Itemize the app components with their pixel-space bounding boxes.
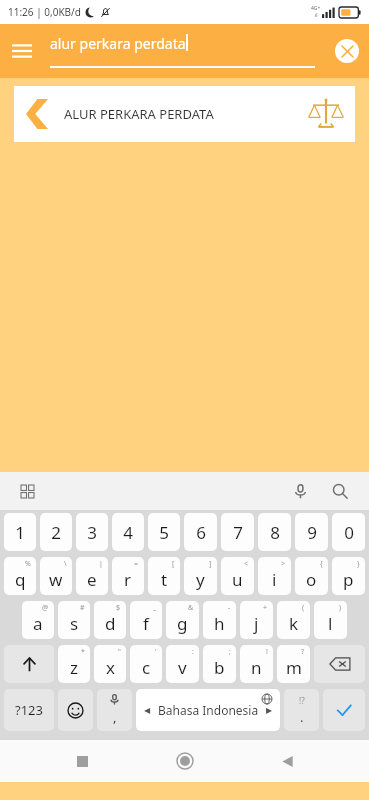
staticText: ▶	[266, 706, 273, 715]
button[interactable]: #	[58, 601, 90, 639]
button[interactable]: 7	[221, 513, 254, 551]
button[interactable]: @	[22, 601, 54, 639]
button[interactable]: comma	[97, 689, 132, 731]
staticText: ALUR PERKARA PERDATA	[64, 105, 214, 123]
staticText: q	[15, 568, 26, 591]
staticText: ,	[113, 708, 117, 726]
button[interactable]: emoji	[58, 689, 93, 731]
staticText: ]	[209, 559, 212, 569]
button[interactable]: %	[4, 557, 36, 595]
button[interactable]: {	[295, 557, 328, 595]
staticText: r	[124, 568, 132, 591]
staticText: alur perkara perdata	[50, 34, 186, 53]
staticText: 11:26 | 0,0KB/d	[8, 5, 81, 19]
staticText: ◀	[144, 706, 151, 715]
staticText: 7	[233, 521, 243, 544]
staticText: <	[244, 559, 249, 569]
button[interactable]: period	[284, 689, 319, 731]
button[interactable]: 1	[4, 513, 36, 551]
button[interactable]: >	[258, 557, 291, 595]
staticText: f	[143, 612, 149, 635]
button[interactable]: ALUR PERKARA PERDATA	[14, 86, 355, 142]
button[interactable]: $	[94, 601, 126, 639]
button[interactable]: ◀	[136, 689, 280, 731]
button[interactable]: _	[130, 601, 162, 639]
button[interactable]: \	[40, 557, 72, 595]
button[interactable]: Clear search	[325, 29, 369, 73]
button[interactable]: }	[332, 557, 365, 595]
button[interactable]: *	[58, 645, 90, 683]
button[interactable]: 2	[40, 513, 72, 551]
staticText: x	[106, 656, 115, 679]
staticText: +	[263, 603, 268, 613]
staticText: (	[302, 603, 305, 613]
staticText: w	[49, 568, 63, 591]
button[interactable]: !	[240, 645, 273, 683]
staticText: b	[214, 656, 225, 679]
staticText: 1	[15, 521, 25, 544]
staticText: y	[196, 568, 205, 591]
button[interactable]: Home	[164, 740, 206, 782]
button[interactable]: 5	[148, 513, 180, 551]
button[interactable]: ?	[277, 645, 310, 683]
staticText: .	[300, 708, 304, 726]
button[interactable]: &	[166, 601, 199, 639]
button[interactable]: del	[314, 645, 365, 683]
button[interactable]: Menu	[0, 29, 44, 73]
button[interactable]: "	[94, 645, 126, 683]
button[interactable]: shift	[4, 645, 54, 683]
staticText: -	[228, 603, 231, 613]
button[interactable]: :	[166, 645, 199, 683]
button[interactable]: -	[203, 601, 236, 639]
staticText: o	[306, 568, 317, 591]
button[interactable]: ;	[203, 645, 236, 683]
staticText: l	[328, 612, 333, 635]
staticText: 4G+	[311, 5, 321, 12]
staticText: p	[343, 568, 354, 591]
staticText: a	[33, 612, 43, 635]
button[interactable]: <	[221, 557, 254, 595]
button[interactable]: alur perkara perdata	[50, 34, 315, 68]
button[interactable]: 6	[184, 513, 217, 551]
staticText: ıl	[315, 12, 318, 19]
staticText: )	[339, 603, 342, 613]
staticText: n	[251, 656, 262, 679]
button[interactable]: Recent apps	[61, 740, 103, 782]
button[interactable]: Voice input	[285, 476, 315, 506]
staticText: g	[177, 612, 188, 635]
button[interactable]: Search	[325, 476, 355, 506]
button[interactable]: 9	[295, 513, 328, 551]
staticText: 5	[159, 521, 169, 544]
staticText: :	[192, 647, 194, 657]
staticText: !?	[299, 695, 305, 706]
button[interactable]: Keyboard menu	[14, 478, 40, 504]
staticText: *	[81, 647, 85, 657]
button[interactable]: ?123	[4, 689, 54, 731]
button[interactable]: +	[240, 601, 273, 639]
button[interactable]: ]	[184, 557, 217, 595]
button[interactable]: enter	[323, 689, 365, 731]
staticText: z	[70, 656, 78, 679]
staticText: u	[232, 568, 243, 591]
button[interactable]: '	[130, 645, 162, 683]
button[interactable]: Back	[266, 740, 308, 782]
staticText: e	[87, 568, 97, 591]
staticText: [	[172, 559, 175, 569]
button[interactable]: 3	[76, 513, 108, 551]
staticText: !	[266, 647, 268, 657]
button[interactable]: (	[277, 601, 310, 639]
staticText: 2	[51, 521, 61, 544]
button[interactable]: 8	[258, 513, 291, 551]
button[interactable]: 4	[112, 513, 144, 551]
staticText: Bahasa Indonesia	[158, 702, 259, 718]
button[interactable]: |	[76, 557, 108, 595]
button[interactable]: )	[314, 601, 347, 639]
button[interactable]: [	[148, 557, 180, 595]
staticText: |	[99, 559, 103, 569]
staticText: d	[105, 612, 116, 635]
staticText: s	[70, 612, 79, 635]
staticText: =	[134, 559, 139, 569]
staticText: h	[214, 612, 225, 635]
button[interactable]: 0	[332, 513, 365, 551]
button[interactable]: =	[112, 557, 144, 595]
